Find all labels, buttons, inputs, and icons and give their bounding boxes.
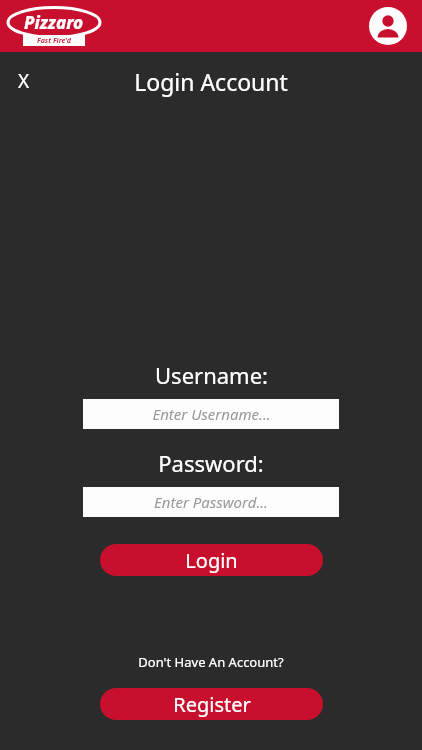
staticText: Don't Have An Account? (138, 653, 284, 671)
button[interactable]: Close (6, 63, 42, 99)
staticText: Register (173, 691, 251, 718)
button[interactable]: Register (100, 688, 323, 720)
button[interactable]: Login (100, 544, 323, 576)
staticText: Fast Fire'd (37, 36, 71, 46)
staticText: X (18, 68, 30, 94)
button[interactable]: Enter Username... (83, 399, 339, 429)
staticText: Enter Username... (152, 404, 271, 424)
staticText: Pizzaro (24, 11, 84, 34)
staticText: Login Account (134, 66, 288, 97)
staticText: Login (185, 547, 238, 574)
button[interactable]: Pizzaro home (8, 6, 100, 46)
staticText: Username: (155, 360, 268, 390)
staticText: Enter Password... (154, 492, 268, 512)
button[interactable]: Enter Password... (83, 487, 339, 517)
button[interactable]: Account (368, 6, 408, 46)
staticText: Password: (158, 448, 264, 478)
